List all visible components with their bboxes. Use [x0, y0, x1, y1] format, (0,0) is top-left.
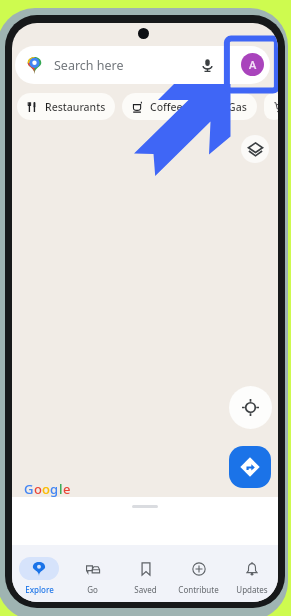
button[interactable]: Coffee	[122, 93, 193, 120]
staticText: Go	[87, 584, 98, 595]
staticText: g	[50, 480, 59, 498]
button[interactable]: Go	[66, 545, 119, 602]
staticText: Saved	[134, 584, 157, 595]
button[interactable]: Directions	[229, 446, 271, 488]
staticText: o	[34, 480, 42, 498]
button[interactable]: Search with voice	[198, 56, 216, 74]
staticText: Restaurants	[45, 100, 106, 114]
staticText: l	[59, 480, 63, 498]
button[interactable]: Search here	[15, 46, 270, 84]
button[interactable]: Explore	[12, 545, 66, 602]
staticText: Contribute	[178, 584, 219, 595]
button[interactable]: Shop	[264, 93, 278, 120]
button[interactable]: Re-center my location	[229, 386, 272, 429]
staticText: Search here	[54, 57, 124, 74]
button[interactable]: Gas	[200, 93, 257, 120]
staticText: Updates	[236, 584, 268, 595]
staticText: Explore	[25, 584, 54, 595]
button[interactable]: Saved	[119, 545, 172, 602]
button[interactable]: Restaurants	[17, 93, 115, 120]
staticText: Coffee	[150, 100, 183, 114]
button[interactable]: Updates	[225, 545, 278, 602]
staticText: Gas	[228, 100, 247, 114]
staticText: o	[42, 480, 50, 498]
staticText: A	[249, 57, 257, 72]
button[interactable]: Map layers	[241, 135, 269, 163]
staticText: e	[63, 480, 71, 498]
button[interactable]: Contribute	[172, 545, 225, 602]
button[interactable]: Account	[241, 53, 264, 76]
staticText: G	[24, 480, 34, 498]
